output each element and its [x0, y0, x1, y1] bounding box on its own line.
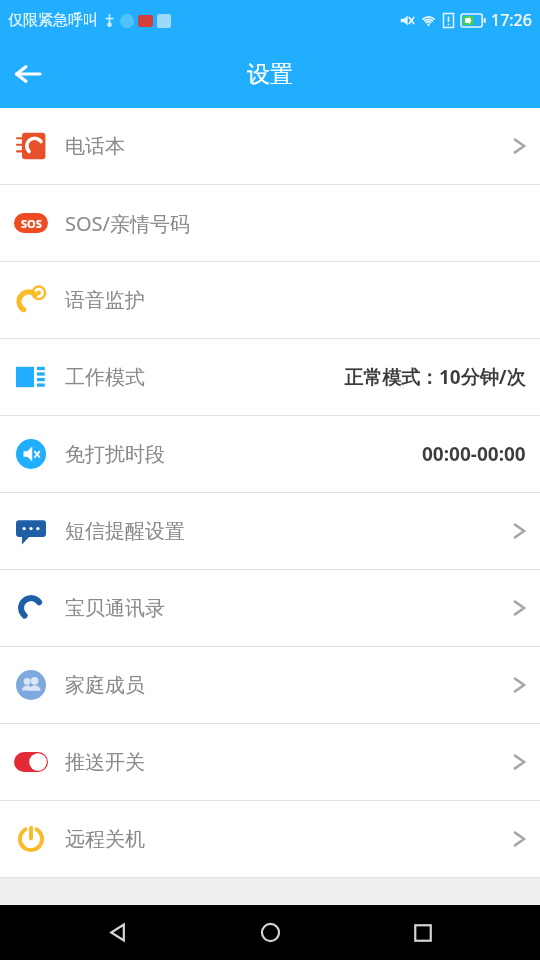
staticText: 仅限紧急呼叫	[8, 11, 98, 30]
staticText: 00:00-00:00	[422, 441, 526, 467]
button[interactable]: 短信提醒设置	[0, 493, 540, 569]
staticText: 语音监护	[65, 288, 145, 313]
button[interactable]: 宝贝通讯录	[0, 570, 540, 646]
staticText: 家庭成员	[65, 673, 145, 698]
button[interactable]: Home	[235, 905, 305, 960]
button[interactable]: 语音监护	[0, 262, 540, 338]
staticText: 宝贝通讯录	[65, 596, 165, 621]
staticText: 工作模式	[65, 365, 145, 390]
button[interactable]: 工作模式	[0, 339, 540, 415]
staticText: SOS	[21, 216, 42, 231]
button[interactable]: Recents	[388, 905, 458, 960]
staticText: 电话本	[65, 134, 125, 159]
staticText: 远程关机	[65, 827, 145, 852]
staticText: 17:26	[491, 9, 532, 31]
button[interactable]: 推送开关	[0, 724, 540, 800]
button[interactable]: 远程关机	[0, 801, 540, 877]
button[interactable]: Back	[83, 905, 153, 960]
staticText: 推送开关	[65, 750, 145, 775]
staticText: 正常模式：10分钟/次	[344, 364, 526, 390]
button[interactable]: 家庭成员	[0, 647, 540, 723]
staticText: 短信提醒设置	[65, 519, 185, 544]
staticText: 免打扰时段	[65, 442, 165, 467]
button[interactable]: SOS	[0, 185, 540, 261]
staticText: SOS/亲情号码	[65, 210, 191, 237]
button[interactable]: Back	[0, 46, 56, 102]
button[interactable]: 免打扰时段	[0, 416, 540, 492]
staticText: 设置	[247, 60, 293, 89]
button[interactable]: 电话本	[0, 108, 540, 184]
